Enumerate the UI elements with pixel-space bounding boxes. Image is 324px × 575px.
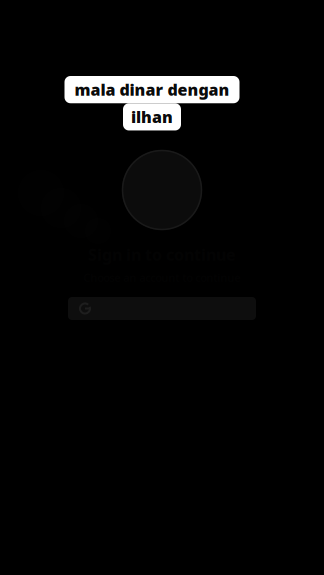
staticText: ilhan bbox=[131, 106, 173, 127]
staticText: mala dinar dengan bbox=[74, 79, 229, 100]
